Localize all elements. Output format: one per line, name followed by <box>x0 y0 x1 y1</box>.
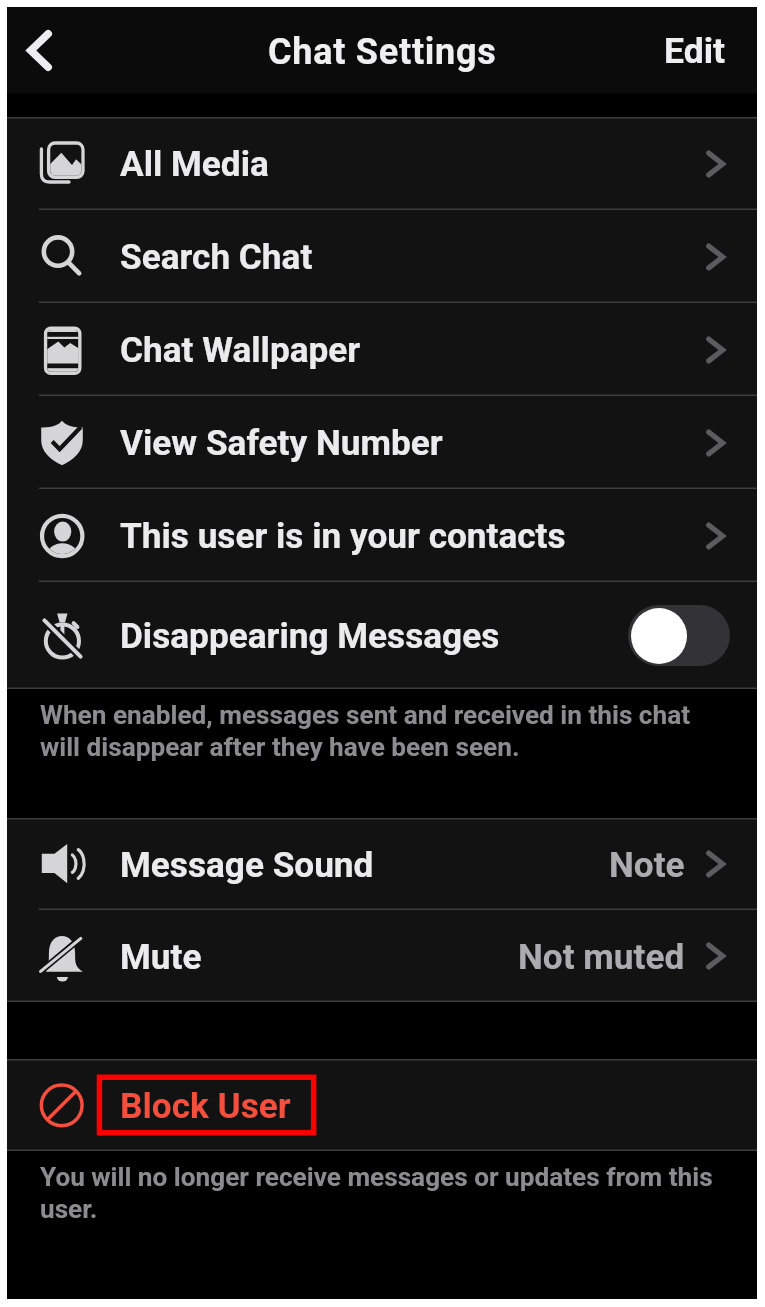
staticText: Not muted <box>518 936 685 977</box>
button[interactable]: This user is in your contacts <box>7 489 757 582</box>
staticText: Disappearing Messages <box>120 615 500 656</box>
staticText: When enabled, messages sent and received… <box>40 700 725 762</box>
button[interactable]: Mute <box>7 910 757 1002</box>
button[interactable]: Search Chat <box>7 210 757 303</box>
staticText: Search Chat <box>120 236 313 277</box>
staticText: You will no longer receive messages or u… <box>40 1162 725 1224</box>
button[interactable]: Edit <box>633 13 757 87</box>
button[interactable]: All Media <box>7 117 757 210</box>
staticText: View Safety Number <box>120 422 443 463</box>
button[interactable]: View Safety Number <box>7 396 757 489</box>
button[interactable]: Chat Wallpaper <box>7 303 757 396</box>
staticText: Block User <box>120 1085 291 1126</box>
staticText: All Media <box>120 143 269 184</box>
button[interactable]: Disappearing Messages <box>7 582 757 689</box>
staticText: Note <box>609 844 685 885</box>
staticText: Edit <box>664 30 726 72</box>
staticText: This user is in your contacts <box>120 515 566 556</box>
staticText: Chat Settings <box>268 31 497 73</box>
staticText: Chat Wallpaper <box>120 329 361 370</box>
staticText: Mute <box>120 936 202 977</box>
staticText: Message Sound <box>120 844 374 885</box>
button[interactable]: Message Sound <box>7 818 757 910</box>
button[interactable]: Block User <box>7 1059 757 1151</box>
button[interactable]: Back <box>8 19 70 81</box>
